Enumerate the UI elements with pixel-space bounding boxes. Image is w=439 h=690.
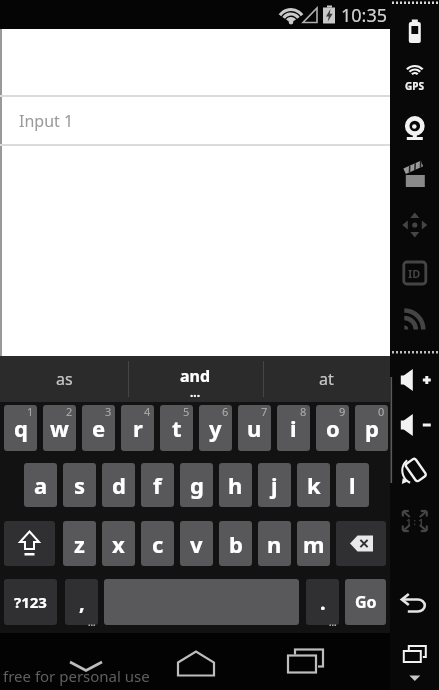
button[interactable]: c: [141, 521, 174, 566]
staticText: q: [14, 413, 28, 443]
staticText: h: [228, 470, 243, 500]
staticText: v: [190, 529, 203, 559]
staticText: ...: [329, 616, 337, 628]
staticText: k: [307, 470, 321, 500]
button[interactable]: r: [121, 405, 154, 451]
button[interactable]: Go: [345, 579, 386, 625]
button[interactable]: [394, 61, 436, 97]
staticText: ,: [79, 589, 85, 616]
button[interactable]: y: [199, 405, 232, 451]
staticText: l: [349, 470, 356, 500]
button[interactable]: b: [219, 521, 252, 566]
button[interactable]: [394, 243, 436, 279]
staticText: 4: [144, 404, 151, 419]
staticText: y: [209, 413, 222, 443]
staticText: g: [190, 470, 204, 500]
staticText: .: [320, 589, 326, 616]
button[interactable]: ,: [65, 579, 98, 625]
button[interactable]: w: [43, 405, 76, 451]
button[interactable]: [394, 362, 436, 398]
button[interactable]: k: [297, 463, 330, 507]
staticText: o: [326, 413, 340, 443]
button[interactable]: g: [180, 463, 213, 507]
staticText: s: [74, 470, 86, 500]
button[interactable]: [394, 14, 436, 50]
staticText: j: [271, 470, 278, 500]
button[interactable]: e: [82, 405, 115, 451]
button[interactable]: i: [277, 405, 310, 451]
button[interactable]: [394, 586, 436, 622]
button[interactable]: a: [24, 463, 57, 507]
staticText: 7: [261, 404, 268, 419]
staticText: 10:35: [341, 3, 388, 27]
staticText: 6: [222, 404, 229, 419]
button[interactable]: [394, 636, 436, 672]
button[interactable]: [394, 290, 436, 326]
button[interactable]: s: [63, 463, 96, 507]
button[interactable]: [56, 650, 116, 680]
button[interactable]: m: [297, 521, 330, 566]
button[interactable]: q: [4, 405, 37, 451]
button[interactable]: [336, 521, 386, 566]
staticText: e: [92, 413, 106, 443]
staticText: Go: [355, 591, 377, 613]
button[interactable]: z: [63, 521, 96, 566]
staticText: free for personal use: [3, 666, 150, 686]
staticText: u: [247, 413, 262, 443]
staticText: as: [56, 368, 73, 390]
staticText: r: [133, 413, 143, 443]
button[interactable]: [394, 161, 436, 197]
staticText: ...: [88, 616, 96, 628]
button[interactable]: f: [141, 463, 174, 507]
staticText: d: [112, 470, 126, 500]
staticText: ID: [408, 266, 421, 280]
staticText: 1: [27, 404, 34, 419]
staticText: ?123: [14, 592, 47, 612]
staticText: n: [267, 529, 282, 559]
button[interactable]: [394, 203, 436, 239]
staticText: ...: [190, 384, 201, 400]
staticText: 1 : 1: [406, 515, 424, 527]
staticText: 8: [300, 404, 307, 419]
staticText: at: [319, 368, 334, 390]
staticText: and: [180, 365, 211, 387]
staticText: 0: [378, 404, 385, 419]
staticText: a: [34, 470, 48, 500]
button[interactable]: [394, 407, 436, 443]
button[interactable]: [394, 452, 436, 488]
button[interactable]: [166, 645, 226, 683]
staticText: c: [152, 529, 164, 559]
staticText: 3: [105, 404, 112, 419]
staticText: b: [229, 529, 243, 559]
button[interactable]: as: [0, 356, 128, 402]
button[interactable]: [394, 503, 436, 539]
button[interactable]: [273, 645, 333, 683]
button[interactable]: at: [263, 356, 390, 402]
staticText: f: [153, 470, 162, 500]
staticText: p: [365, 413, 379, 443]
button[interactable]: d: [102, 463, 135, 507]
button[interactable]: [394, 108, 436, 144]
staticText: m: [303, 529, 325, 559]
button[interactable]: p: [355, 405, 388, 451]
button[interactable]: ?123: [4, 579, 57, 625]
staticText: 5: [183, 404, 190, 419]
staticText: t: [172, 413, 182, 443]
button[interactable]: [4, 521, 55, 566]
staticText: GPS: [405, 79, 424, 91]
button[interactable]: .: [306, 579, 339, 625]
button[interactable]: and: [128, 353, 263, 399]
staticText: Input 1: [19, 110, 74, 132]
staticText: i: [290, 413, 297, 443]
button[interactable]: h: [219, 463, 252, 507]
staticText: 9: [339, 404, 346, 419]
button[interactable]: j: [258, 463, 291, 507]
button[interactable]: u: [238, 405, 271, 451]
button[interactable]: x: [102, 521, 135, 566]
button[interactable]: o: [316, 405, 349, 451]
button[interactable]: v: [180, 521, 213, 566]
button[interactable]: l: [336, 463, 369, 507]
button[interactable]: t: [160, 405, 193, 451]
button[interactable]: n: [258, 521, 291, 566]
